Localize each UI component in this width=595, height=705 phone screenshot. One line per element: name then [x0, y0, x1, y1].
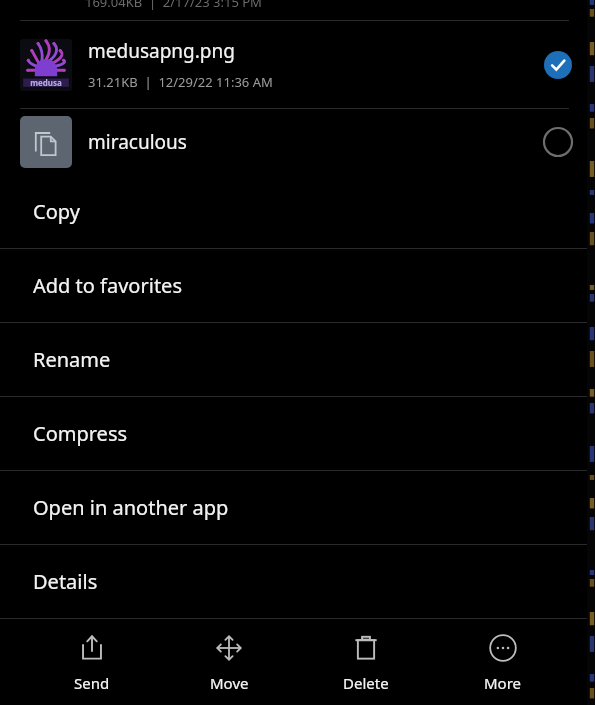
button[interactable]: Select	[543, 127, 573, 157]
button[interactable]: Copy	[0, 175, 595, 248]
button[interactable]: Selected	[543, 50, 573, 80]
staticText: More	[484, 673, 522, 693]
staticText: miraculous	[88, 129, 187, 155]
staticText: Delete	[343, 673, 389, 693]
staticText: Open in another app	[33, 494, 229, 521]
button[interactable]: Compress	[0, 397, 595, 470]
staticText: medusa	[30, 77, 62, 88]
staticText: Details	[33, 568, 98, 595]
button[interactable]: Delete	[321, 619, 411, 705]
button[interactable]: Rename	[0, 323, 595, 396]
button[interactable]: Add to favorites	[0, 249, 595, 322]
staticText: Compress	[33, 420, 128, 447]
button[interactable]: More	[458, 619, 548, 705]
button[interactable]: Send	[47, 619, 137, 705]
button[interactable]: Move	[184, 619, 274, 705]
staticText: Copy	[33, 198, 80, 225]
staticText: medusapng.png	[88, 38, 235, 64]
button[interactable]: Details	[0, 545, 595, 618]
button[interactable]: medusa	[0, 21, 595, 108]
button[interactable]: Open in another app	[0, 471, 595, 544]
staticText: 31.21KB | 12/29/22 11:36 AM	[88, 73, 273, 91]
staticText: Move	[210, 673, 249, 693]
staticText: Add to favorites	[33, 272, 182, 299]
staticText: Rename	[33, 346, 111, 373]
staticText: Send	[74, 673, 110, 693]
staticText: 169.04KB | 2/17/23 3:15 PM	[85, 0, 262, 11]
